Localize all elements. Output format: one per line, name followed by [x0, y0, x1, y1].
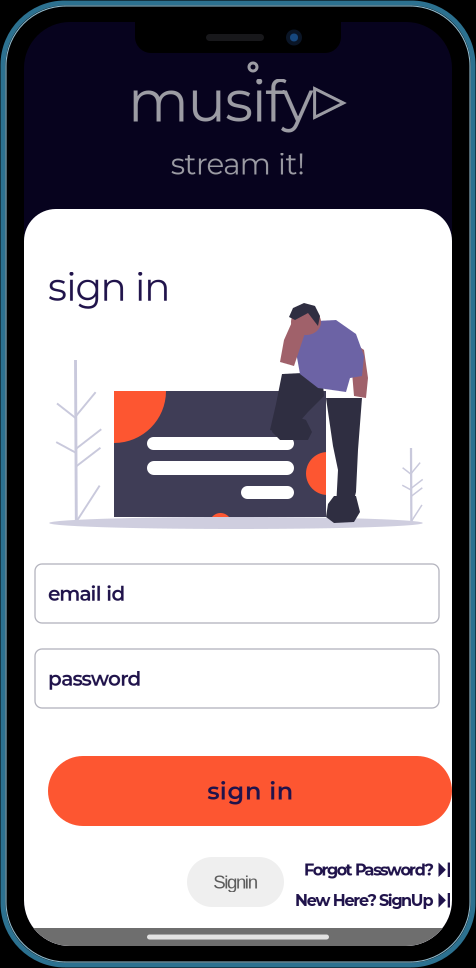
staticText: sign in [48, 263, 170, 310]
staticText: Forgot Password? [304, 860, 433, 879]
button[interactable]: sign in [48, 756, 452, 826]
staticText: Signin [213, 872, 258, 892]
button[interactable]: email id [35, 564, 439, 623]
staticText: stream it! [171, 146, 305, 182]
button[interactable]: New Here? SignUp [295, 890, 450, 910]
button[interactable]: Signin [187, 857, 284, 907]
staticText: musify [128, 66, 313, 136]
staticText: password [48, 666, 141, 691]
staticText: New Here? SignUp [295, 890, 433, 910]
staticText: email id [48, 581, 125, 606]
button[interactable]: password [35, 649, 439, 708]
staticText: sign in [207, 776, 293, 806]
button[interactable]: Forgot Password? [304, 860, 450, 879]
